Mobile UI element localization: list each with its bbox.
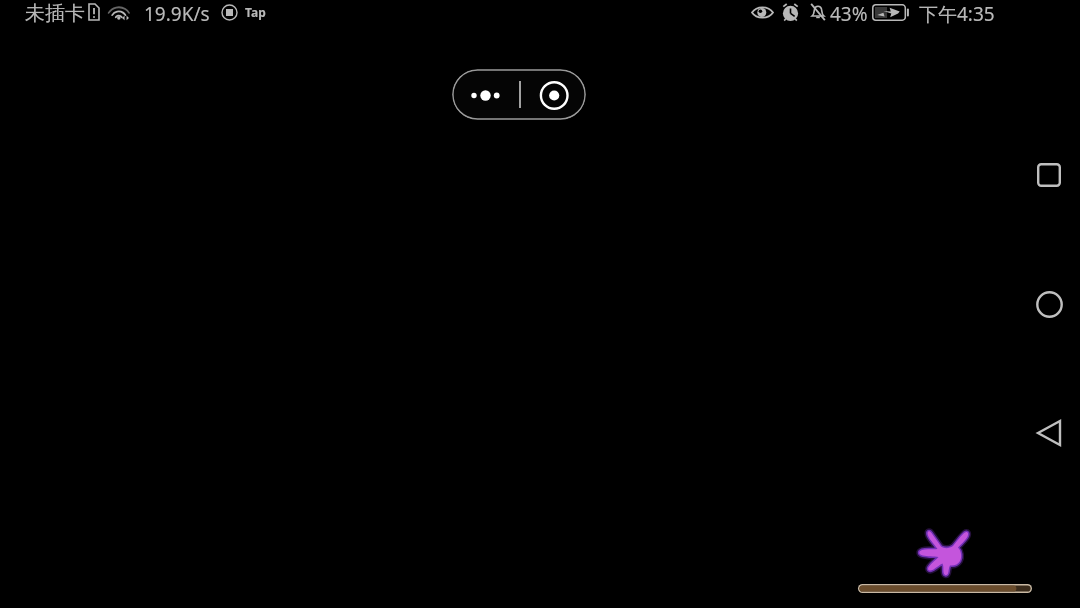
staticText: Tap	[245, 4, 266, 20]
button[interactable]: Home	[1029, 284, 1069, 324]
button[interactable]: Back	[1029, 413, 1069, 453]
button[interactable]: Recents	[1029, 155, 1069, 195]
staticText: 下午4:35	[919, 1, 995, 25]
staticText: 43%	[830, 1, 868, 25]
button[interactable]: More options	[458, 73, 516, 116]
staticText: 19.9K/s	[144, 1, 210, 25]
button[interactable]: Game canvas	[0, 26, 1024, 608]
other: Loading progress	[858, 584, 1032, 593]
staticText: 未插卡	[25, 1, 85, 25]
button[interactable]: Record	[522, 73, 584, 116]
